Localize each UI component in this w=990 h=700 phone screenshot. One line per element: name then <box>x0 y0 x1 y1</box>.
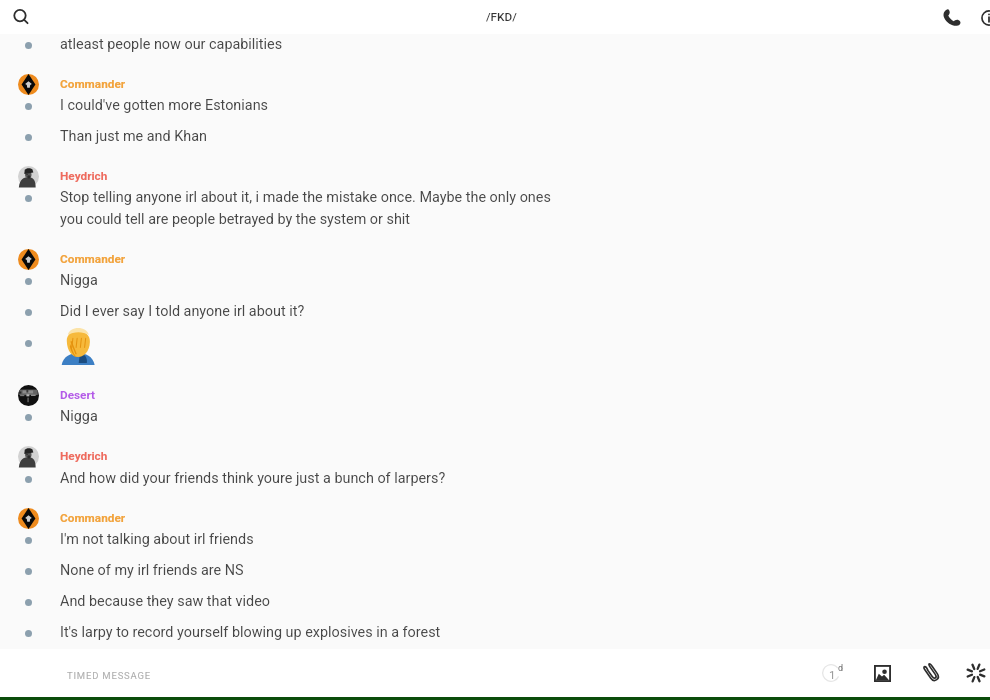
button[interactable]: I could've gotten more Estonians <box>0 94 990 117</box>
staticText: And how did your friends think youre jus… <box>60 470 446 487</box>
staticText: Commander <box>60 252 126 266</box>
staticText: Nigga <box>60 408 98 425</box>
button[interactable]: Nigga <box>0 405 990 428</box>
button[interactable]: Attach file <box>911 654 953 692</box>
staticText: Commander <box>60 511 126 525</box>
button[interactable]: Did I ever say I told anyone irl about i… <box>0 300 990 323</box>
staticText: I could've gotten more Estonians <box>60 97 269 114</box>
staticText: Stop telling anyone irl about it, i made… <box>60 189 551 206</box>
button[interactable]: And how did your friends think youre jus… <box>0 467 990 490</box>
staticText: I'm not talking about irl friends <box>60 531 254 548</box>
staticText: TIMED MESSAGE <box>67 670 151 681</box>
button[interactable]: I'm not talking about irl friends <box>0 528 990 551</box>
button[interactable]: Stop telling anyone irl about it, i made… <box>0 186 990 231</box>
staticText: Heydrich <box>60 169 108 183</box>
button[interactable]: Effects <box>966 654 990 692</box>
button[interactable]: None of my irl friends are NS <box>0 559 990 582</box>
button[interactable]: Nigga <box>0 269 990 292</box>
staticText: None of my irl friends are NS <box>60 562 244 579</box>
staticText: you could tell are people betrayed by th… <box>60 211 411 228</box>
button[interactable]: Desert <box>0 384 990 407</box>
staticText: Did I ever say I told anyone irl about i… <box>60 303 305 320</box>
staticText: /FKD/ <box>486 10 517 24</box>
staticText: 1 <box>829 668 836 681</box>
staticText: atleast people now our capabilities <box>60 36 283 53</box>
staticText: Heydrich <box>60 449 108 463</box>
button[interactable]: Commander <box>0 248 990 271</box>
button[interactable]: Commander <box>0 507 990 530</box>
button[interactable]: Heydrich <box>0 445 990 468</box>
staticText: Nigga <box>60 272 98 289</box>
button[interactable]: Call <box>930 1 972 34</box>
button[interactable]: It's larpy to record yourself blowing up… <box>0 621 990 644</box>
button[interactable]: TIMED MESSAGE <box>0 649 800 697</box>
button[interactable]: atleast people now our capabilities <box>0 33 990 56</box>
staticText: Than just me and Khan <box>60 128 207 145</box>
staticText: Desert <box>60 388 96 402</box>
button[interactable]: And because they saw that video <box>0 590 990 613</box>
button[interactable]: Commander <box>0 73 990 96</box>
staticText: And because they saw that video <box>60 593 271 610</box>
button[interactable]: Search <box>0 1 42 34</box>
button[interactable]: Photo <box>861 654 903 692</box>
staticText: It's larpy to record yourself blowing up… <box>60 624 441 641</box>
button[interactable]: Heydrich <box>0 165 990 188</box>
button[interactable]: Facepalm emoji <box>0 334 990 374</box>
staticText: d <box>838 663 844 674</box>
button[interactable]: Than just me and Khan <box>0 125 990 148</box>
staticText: Commander <box>60 77 126 91</box>
button[interactable]: Timed message duration <box>810 654 852 692</box>
button[interactable]: Info <box>981 1 990 34</box>
